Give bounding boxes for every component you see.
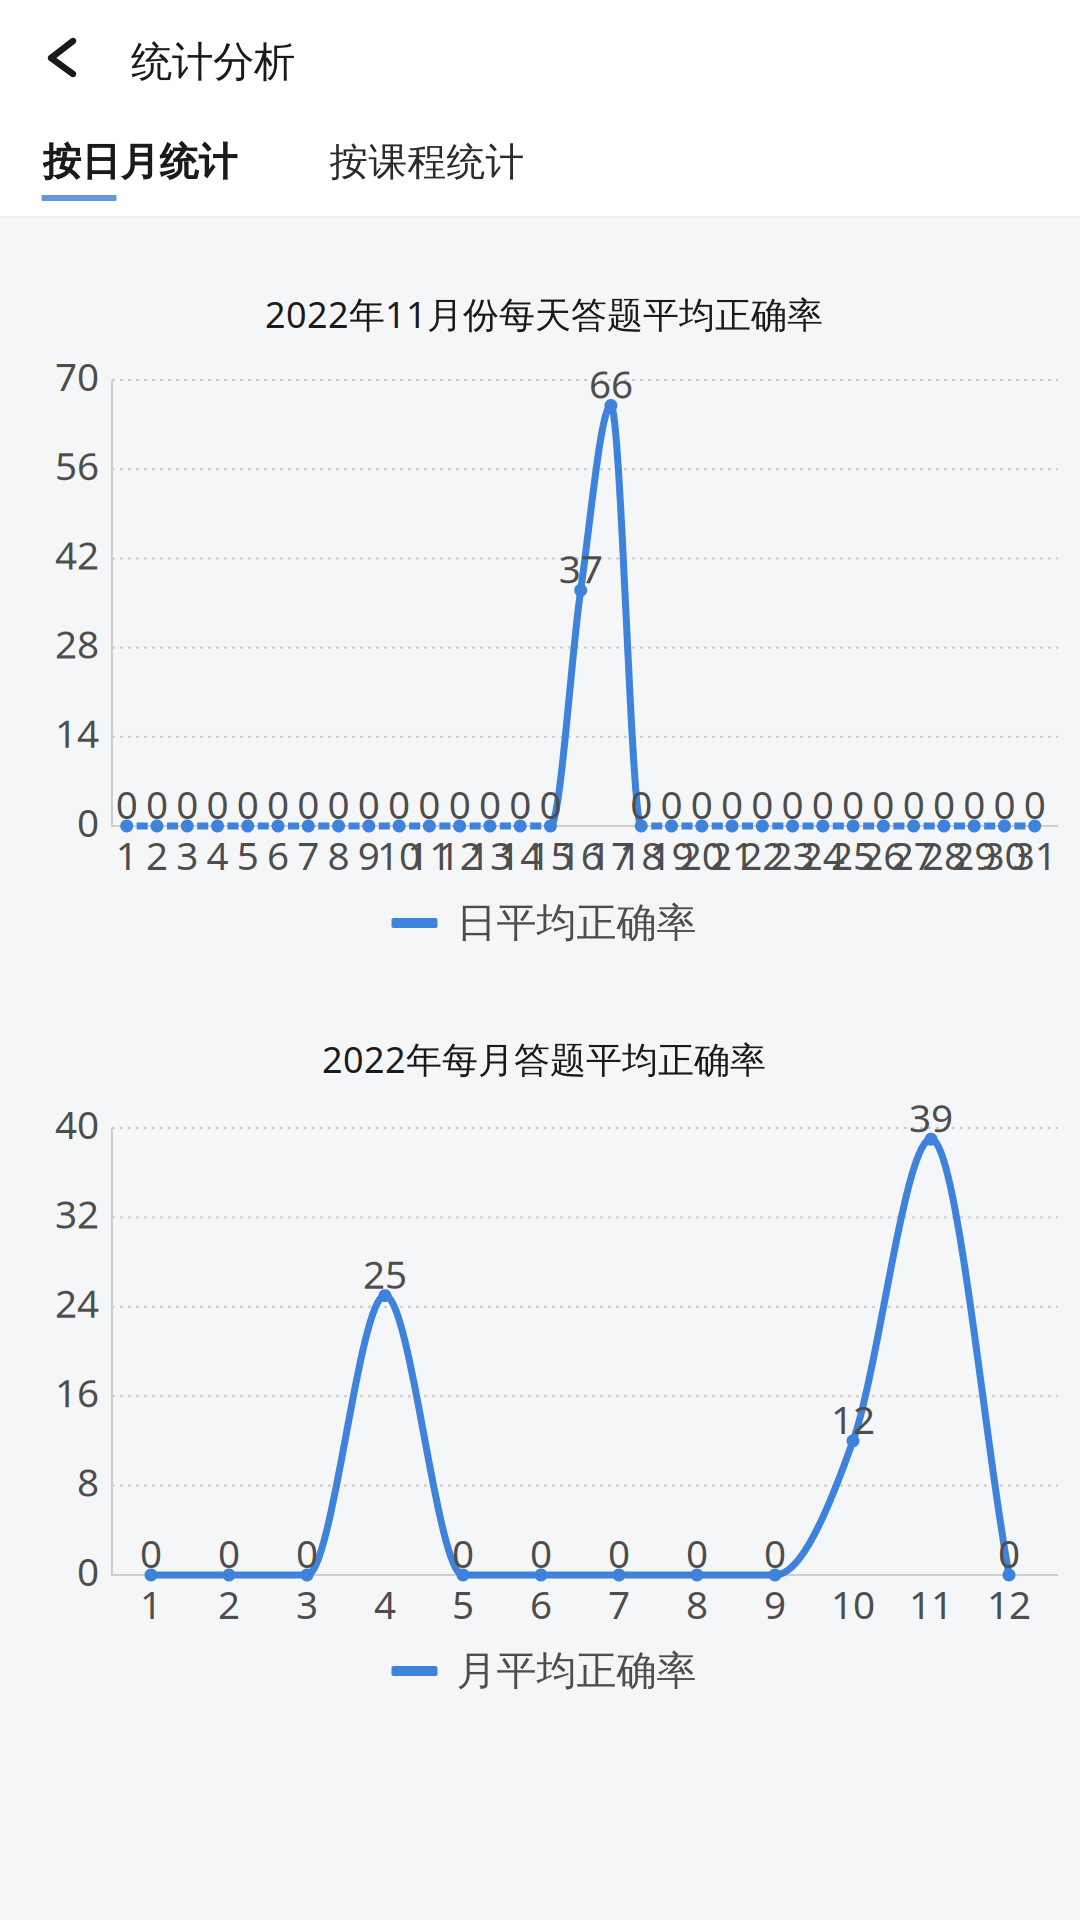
staticText: 16 [559,829,603,881]
staticText: 31 [1013,829,1057,881]
staticText: 0 [388,778,410,830]
staticText: 25 [831,829,875,881]
staticText: 26 [861,829,905,881]
staticText: 0 [218,1527,240,1579]
staticText: 30 [982,829,1026,881]
staticText: 0 [267,778,289,830]
staticText: 按课程统计 [329,138,524,186]
button[interactable]: Back [34,28,90,88]
staticText: 8 [686,1578,708,1630]
staticText: 0 [509,778,531,830]
staticText: 24 [55,1277,99,1328]
staticText: 56 [55,439,99,491]
staticText: 0 [297,778,319,830]
staticText: 37 [559,543,603,594]
staticText: 28 [922,829,966,881]
staticText: 0 [530,1527,552,1579]
staticText: 22 [740,829,784,881]
staticText: 0 [608,1527,630,1579]
staticText: 2022年11月份每天答题平均正确率 [265,290,823,338]
staticText: 11 [407,829,451,881]
staticText: 10 [831,1578,875,1630]
staticText: 21 [710,829,754,881]
staticText: 19 [649,829,693,881]
staticText: 15 [528,829,572,881]
staticText: 11 [909,1578,953,1630]
staticText: 0 [1024,778,1046,830]
staticText: 70 [55,350,99,402]
staticText: 14 [55,707,99,758]
staticText: 20 [680,829,724,881]
staticText: 0 [479,778,501,830]
staticText: 0 [691,778,713,830]
staticText: 2 [146,829,168,881]
staticText: 18 [619,829,663,881]
button[interactable]: 按日月统计 [42,138,237,186]
staticText: 12 [438,829,482,881]
staticText: 4 [206,829,228,881]
staticText: 0 [933,778,955,830]
staticText: 0 [686,1527,708,1579]
staticText: 0 [418,778,440,830]
staticText: 32 [55,1188,99,1239]
staticText: 0 [116,778,138,830]
staticText: 0 [296,1527,318,1579]
staticText: 13 [468,829,512,881]
staticText: 7 [297,829,319,881]
staticText: 17 [589,829,633,881]
staticText: 12 [831,1393,875,1444]
staticText: 24 [801,829,845,881]
staticText: 0 [963,778,985,830]
staticText: 25 [363,1248,407,1299]
staticText: 6 [267,829,289,881]
staticText: 0 [993,778,1015,830]
staticText: 0 [176,778,198,830]
staticText: 9 [764,1578,786,1630]
staticText: 10 [377,829,421,881]
staticText: 0 [539,778,561,830]
staticText: 0 [77,1545,99,1597]
staticText: 7 [608,1578,630,1630]
staticText: 39 [909,1091,953,1143]
staticText: 0 [237,778,259,830]
staticText: 0 [903,778,925,830]
staticText: 66 [589,358,633,409]
staticText: 14 [498,829,542,881]
staticText: 1 [140,1578,162,1630]
staticText: 0 [764,1527,786,1579]
staticText: 日平均正确率 [456,898,696,947]
staticText: 2 [218,1578,240,1630]
staticText: 6 [530,1578,552,1630]
staticText: 1 [116,829,138,881]
staticText: 23 [771,829,815,881]
staticText: 3 [176,829,198,881]
staticText: 月平均正确率 [456,1646,696,1695]
staticText: 按日月统计 [42,138,237,186]
staticText: 8 [77,1456,99,1507]
staticText: 27 [892,829,936,881]
staticText: 0 [721,778,743,830]
staticText: 40 [55,1098,99,1150]
staticText: 0 [77,796,99,848]
staticText: 0 [140,1527,162,1579]
staticText: 0 [660,778,682,830]
staticText: 0 [449,778,471,830]
staticText: 29 [952,829,996,881]
staticText: 0 [206,778,228,830]
staticText: 统计分析 [131,37,295,87]
staticText: 5 [452,1578,474,1630]
staticText: 0 [998,1527,1020,1579]
staticText: 16 [55,1366,99,1418]
staticText: 4 [374,1578,396,1630]
staticText: 0 [146,778,168,830]
staticText: 0 [630,778,652,830]
staticText: 5 [237,829,259,881]
staticText: 3 [296,1578,318,1630]
staticText: 28 [55,618,99,669]
staticText: 8 [328,829,350,881]
staticText: 42 [55,529,99,580]
button[interactable]: 按课程统计 [329,138,524,186]
staticText: 0 [452,1527,474,1579]
staticText: 12 [987,1578,1031,1630]
staticText: 0 [812,778,834,830]
